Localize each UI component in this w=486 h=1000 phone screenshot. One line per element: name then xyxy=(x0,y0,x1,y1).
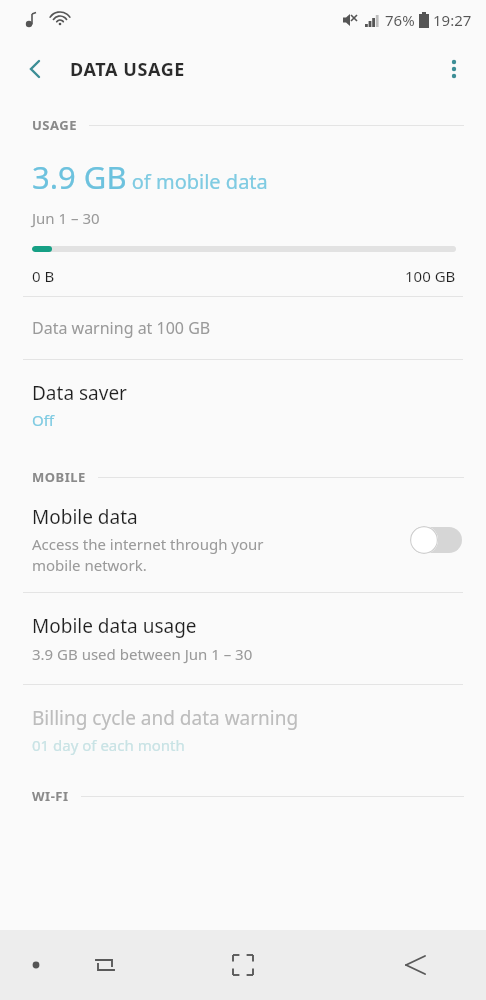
staticText: 100 GB xyxy=(405,266,456,286)
staticText: 19:27 xyxy=(433,10,472,30)
staticText: 01 day of each month xyxy=(32,735,185,755)
staticText: MOBILE xyxy=(32,468,86,486)
staticText: Mobile data usage xyxy=(32,613,197,639)
staticText: 76% xyxy=(385,10,415,30)
staticText: Data warning at 100 GB xyxy=(32,317,211,339)
button[interactable]: Recents xyxy=(82,942,128,988)
staticText: Data saver xyxy=(32,380,127,406)
button[interactable]: Billing cycle and data warning xyxy=(0,685,486,773)
staticText: 3.9 GB used between Jun 1 – 30 xyxy=(32,644,253,664)
button[interactable]: Mobile data toggle xyxy=(410,525,462,555)
staticText: 0 B xyxy=(32,266,55,286)
staticText: Mobile data xyxy=(32,504,138,530)
button[interactable]: Back xyxy=(392,942,438,988)
staticText: USAGE xyxy=(32,116,77,134)
staticText: Jun 1 – 30 xyxy=(32,208,100,228)
button[interactable]: Mobile data xyxy=(0,488,486,592)
button[interactable]: Back xyxy=(18,52,52,86)
staticText: DATA USAGE xyxy=(70,57,186,82)
button[interactable]: Menu xyxy=(14,943,58,987)
staticText: WI-FI xyxy=(32,787,69,805)
button[interactable]: More options xyxy=(436,51,472,87)
button[interactable]: Mobile data usage xyxy=(0,593,486,684)
button[interactable]: Home xyxy=(220,942,266,988)
staticText: Access the internet through your mobile … xyxy=(32,534,297,576)
button[interactable]: Data saver xyxy=(0,360,486,448)
staticText: Off xyxy=(32,410,55,430)
staticText: Billing cycle and data warning xyxy=(32,705,299,731)
button[interactable]: Data warning at 100 GB xyxy=(0,297,486,359)
staticText: 3.9 GB of mobile data xyxy=(32,156,268,198)
